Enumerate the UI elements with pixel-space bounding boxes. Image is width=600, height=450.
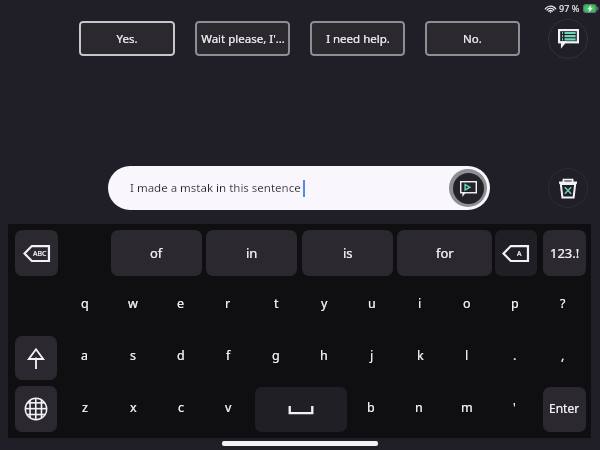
staticText: ABC xyxy=(33,249,47,259)
staticText: Yes. xyxy=(116,31,138,47)
staticText: I need help. xyxy=(326,31,390,47)
button[interactable]: Enter xyxy=(543,387,586,432)
staticText: q xyxy=(81,295,89,312)
button[interactable]: Phrase list xyxy=(548,19,588,59)
button[interactable]: l xyxy=(445,333,489,377)
button[interactable]: of xyxy=(111,230,202,276)
button[interactable]: o xyxy=(445,281,489,325)
staticText: u xyxy=(368,295,376,312)
button[interactable]: m xyxy=(445,385,489,429)
button[interactable]: Backspace xyxy=(495,230,537,276)
staticText: b xyxy=(367,399,375,416)
staticText: o xyxy=(463,295,471,312)
staticText: A xyxy=(517,249,522,259)
button[interactable]: k xyxy=(398,333,442,377)
button[interactable]: n xyxy=(397,385,441,429)
staticText: z xyxy=(82,399,88,416)
button[interactable]: c xyxy=(159,385,203,429)
staticText: Wait please, I'… xyxy=(201,31,285,47)
staticText: f xyxy=(226,347,231,364)
button[interactable]: q xyxy=(63,281,107,325)
staticText: y xyxy=(321,295,328,312)
staticText: 123.! xyxy=(550,244,580,262)
staticText: I made a mstak in this sentence xyxy=(130,180,301,196)
button[interactable]: u xyxy=(350,281,394,325)
button[interactable]: Clear text xyxy=(548,168,588,208)
staticText: for xyxy=(436,244,454,262)
button[interactable]: r xyxy=(206,281,250,325)
button[interactable]: s xyxy=(111,333,155,377)
button[interactable]: Shift xyxy=(15,336,57,380)
button[interactable]: h xyxy=(302,333,346,377)
button[interactable]: Wait please, I'… xyxy=(195,21,290,56)
staticText: ? xyxy=(560,295,566,312)
button[interactable]: p xyxy=(493,281,537,325)
button[interactable]: , xyxy=(541,333,585,377)
staticText: . xyxy=(513,347,517,364)
button[interactable]: w xyxy=(111,281,155,325)
staticText: d xyxy=(177,347,185,364)
staticText: k xyxy=(417,347,424,364)
staticText: e xyxy=(177,295,185,312)
staticText: c xyxy=(178,399,185,416)
button[interactable]: in xyxy=(206,230,297,276)
staticText: is xyxy=(343,244,353,262)
button[interactable]: for xyxy=(397,230,492,276)
button[interactable]: Space xyxy=(255,387,347,432)
button[interactable]: I made a mstak in this sentence xyxy=(108,166,490,210)
staticText: l xyxy=(465,347,469,364)
button[interactable]: f xyxy=(206,333,250,377)
button[interactable]: x xyxy=(111,385,155,429)
staticText: , xyxy=(561,347,565,364)
staticText: s xyxy=(130,347,136,364)
staticText: ' xyxy=(513,399,516,416)
button[interactable]: ? xyxy=(541,281,585,325)
button[interactable]: I need help. xyxy=(310,21,405,56)
button[interactable]: b xyxy=(349,385,393,429)
button[interactable]: t xyxy=(254,281,298,325)
staticText: h xyxy=(320,347,328,364)
staticText: x xyxy=(130,399,137,416)
button[interactable]: is xyxy=(302,230,393,276)
button[interactable]: Switch to letters xyxy=(15,230,58,276)
button[interactable]: . xyxy=(493,333,537,377)
button[interactable]: No. xyxy=(425,21,520,56)
staticText: No. xyxy=(463,31,482,47)
button[interactable]: z xyxy=(63,385,107,429)
button[interactable]: e xyxy=(159,281,203,325)
button[interactable]: d xyxy=(159,333,203,377)
button[interactable]: a xyxy=(63,333,107,377)
button[interactable]: ' xyxy=(492,385,536,429)
button[interactable]: Yes. xyxy=(79,21,175,56)
button[interactable]: 123.! xyxy=(543,230,586,276)
staticText: g xyxy=(272,347,280,364)
button[interactable]: y xyxy=(302,281,346,325)
button[interactable]: j xyxy=(350,333,394,377)
button[interactable]: g xyxy=(254,333,298,377)
staticText: of xyxy=(150,244,163,262)
button[interactable]: Speak xyxy=(449,169,487,207)
staticText: j xyxy=(370,347,374,364)
staticText: Enter xyxy=(549,400,580,416)
staticText: v xyxy=(225,399,232,416)
button[interactable]: i xyxy=(398,281,442,325)
button[interactable]: v xyxy=(206,385,250,429)
button[interactable]: Change keyboard xyxy=(15,386,57,432)
staticText: p xyxy=(511,295,519,312)
staticText: r xyxy=(225,295,231,312)
staticText: w xyxy=(128,295,138,312)
staticText: t xyxy=(274,295,279,312)
staticText: m xyxy=(461,399,473,416)
staticText: in xyxy=(246,244,258,262)
staticText: i xyxy=(418,295,422,312)
staticText: 97 % xyxy=(559,2,580,14)
staticText: n xyxy=(415,399,423,416)
staticText: a xyxy=(81,347,89,364)
